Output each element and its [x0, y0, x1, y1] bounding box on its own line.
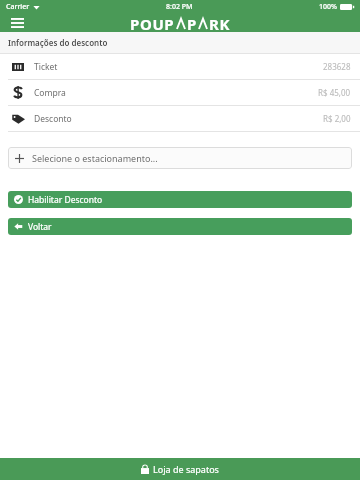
button[interactable]: Habilitar Desconto	[8, 191, 352, 208]
button[interactable]: Ticket	[0, 54, 360, 79]
staticText: Desconto	[34, 113, 72, 125]
staticText: R$ 2,00	[323, 113, 351, 124]
staticText: R$ 45,00	[318, 87, 351, 98]
button[interactable]: Voltar	[8, 218, 352, 235]
button[interactable]: Loja de sapatos	[0, 458, 360, 480]
button[interactable]: Selecione o estacionamento...	[8, 147, 352, 169]
button[interactable]: Desconto	[0, 106, 360, 131]
staticText: Carrier	[6, 2, 30, 12]
staticText: 100%	[319, 2, 337, 12]
staticText: 8:02 PM	[166, 2, 193, 12]
staticText: Habilitar Desconto	[28, 194, 103, 206]
staticText: 283628	[323, 61, 351, 72]
staticText: Selecione o estacionamento...	[32, 152, 158, 164]
button[interactable]: Menu	[6, 14, 28, 32]
staticText: POUP	[130, 14, 175, 32]
staticText: P	[187, 14, 197, 32]
staticText: Loja de sapatos	[153, 463, 219, 475]
staticText: Compra	[34, 87, 66, 99]
staticText: RK	[209, 14, 231, 32]
button[interactable]: Compra	[0, 80, 360, 105]
staticText: Voltar	[28, 221, 52, 233]
staticText: Ticket	[34, 61, 58, 73]
staticText: Informações do desconto	[8, 37, 108, 48]
